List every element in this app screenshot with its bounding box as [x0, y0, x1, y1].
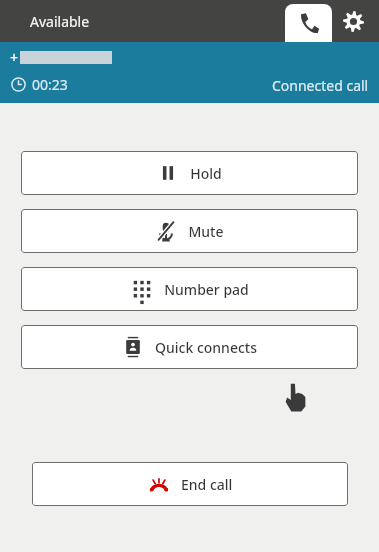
button[interactable]: Quick connects: [21, 325, 358, 369]
staticText: Quick connects: [155, 338, 257, 357]
button[interactable]: Phone: [285, 4, 332, 42]
staticText: Connected call: [272, 76, 369, 95]
staticText: 00:23: [32, 75, 68, 94]
button[interactable]: Mute: [21, 209, 358, 253]
button[interactable]: Hold: [21, 151, 358, 195]
staticText: Number pad: [164, 280, 249, 299]
staticText: End call: [181, 475, 233, 494]
staticText: Available: [30, 12, 90, 31]
button[interactable]: End call: [32, 462, 348, 506]
button[interactable]: Number pad: [21, 267, 358, 311]
button[interactable]: Settings: [335, 3, 371, 39]
staticText: Mute: [188, 222, 224, 241]
staticText: +: [10, 48, 19, 67]
staticText: Hold: [190, 164, 222, 183]
